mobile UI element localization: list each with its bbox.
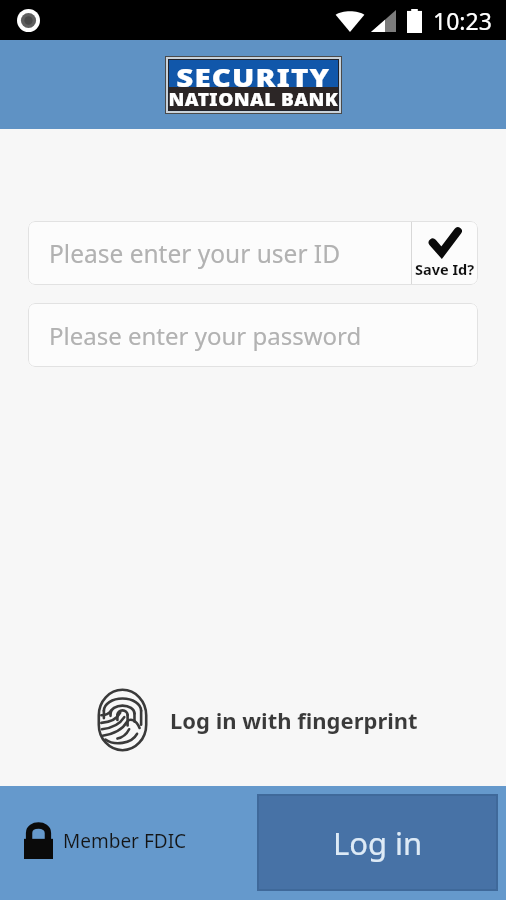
button[interactable]: Save Id	[412, 221, 478, 285]
button[interactable]: Log in	[257, 794, 498, 891]
staticText: NATIONAL BANK	[169, 87, 338, 110]
button[interactable]: Please enter your password	[28, 303, 478, 367]
staticText: SECURITY	[176, 60, 331, 87]
button[interactable]: Log in with fingerprint	[89, 680, 426, 760]
staticText: Member FDIC	[63, 828, 187, 854]
staticText: Log in	[333, 822, 423, 864]
staticText: Please enter your user ID	[49, 237, 341, 270]
button[interactable]: Please enter your user ID	[28, 221, 411, 285]
staticText: Please enter your password	[49, 319, 362, 352]
staticText: Save Id?	[415, 259, 475, 279]
button[interactable]: Member FDIC	[16, 814, 195, 867]
staticText: Log in with fingerprint	[170, 705, 418, 735]
staticText: 10:23	[433, 5, 492, 36]
